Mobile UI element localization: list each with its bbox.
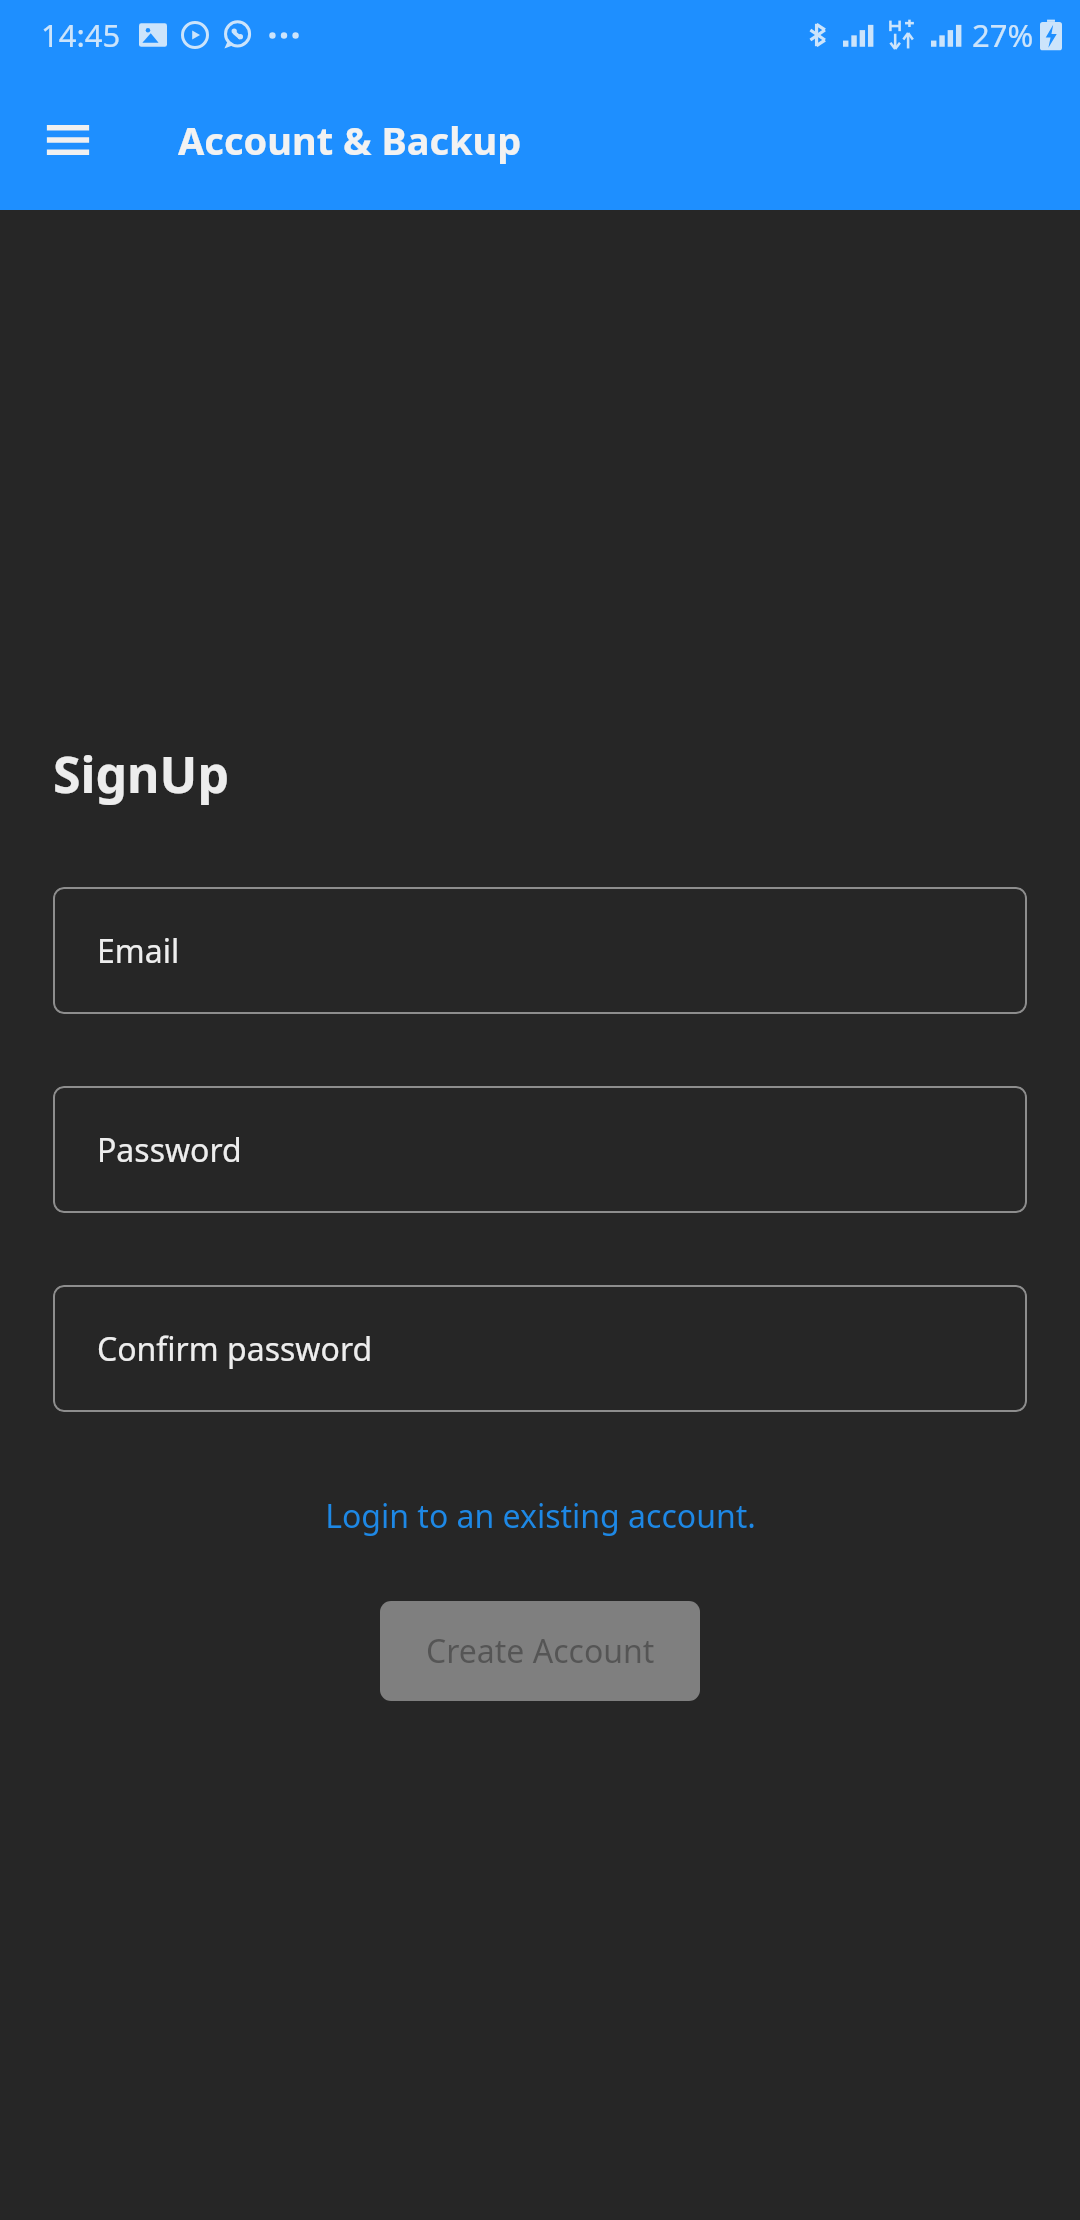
staticText: Account & Backup [178, 114, 522, 166]
button[interactable]: Email [53, 887, 1027, 1014]
staticText: Login to an existing account. [325, 1494, 756, 1538]
button[interactable]: Create Account [380, 1601, 700, 1701]
staticText: 27% [972, 14, 1034, 56]
staticText: 14:45 [41, 14, 121, 56]
staticText: SignUp [53, 740, 229, 808]
button[interactable]: Login to an existing account. [0, 1494, 1080, 1538]
staticText: Email [97, 929, 180, 973]
staticText: Password [97, 1128, 242, 1172]
button[interactable]: Confirm password [53, 1285, 1027, 1412]
button[interactable]: Password [53, 1086, 1027, 1213]
staticText: Create Account [426, 1629, 655, 1673]
staticText: Confirm password [97, 1327, 373, 1371]
button[interactable]: Open navigation menu [30, 102, 106, 178]
